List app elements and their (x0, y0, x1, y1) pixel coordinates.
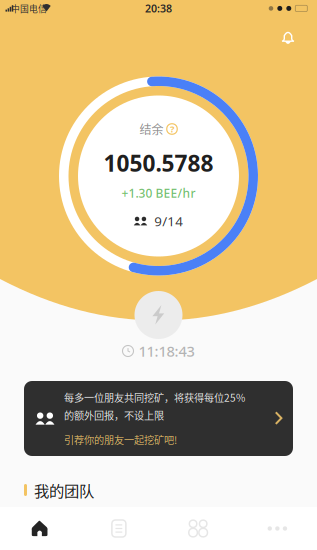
staticText: 9/14 (154, 212, 183, 230)
staticText: 11:18:43 (138, 341, 194, 361)
staticText: 中国电信 (11, 2, 47, 15)
button[interactable]: 每多一位朋友共同挖矿，将获得每位25% (24, 381, 293, 456)
staticText: 引荐你的朋友一起挖矿吧! (64, 432, 177, 447)
staticText: 的额外回报，不设上限 (64, 408, 164, 422)
staticText: 1050.5788 (103, 148, 213, 178)
button[interactable]: Records (79, 507, 158, 550)
staticText: 我的团队 (34, 479, 94, 501)
staticText: 结余 (139, 120, 163, 138)
staticText: ? (170, 123, 174, 135)
button[interactable]: Start mining (134, 291, 182, 339)
button[interactable]: Home (0, 507, 79, 550)
staticText: 20:38 (145, 1, 172, 15)
staticText: 每多一位朋友共同挖矿，将获得每位25% (64, 390, 245, 405)
button[interactable]: Notifications (273, 22, 303, 52)
staticText: +1.30 BEE/hr (121, 185, 195, 201)
button[interactable]: Team (158, 507, 238, 550)
